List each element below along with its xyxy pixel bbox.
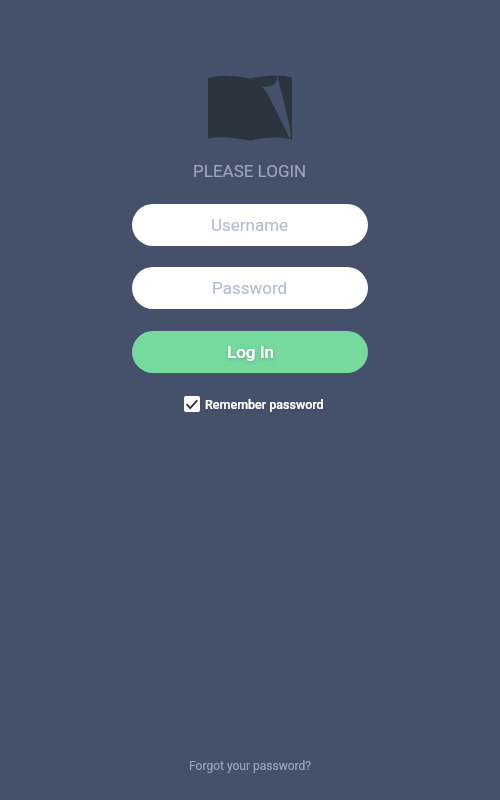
button[interactable]: Forgot your password? (179, 749, 321, 783)
staticText: Remember password (205, 397, 324, 412)
button[interactable]: Password (132, 267, 368, 309)
staticText: Password (212, 278, 288, 298)
button[interactable]: Username (132, 204, 368, 246)
staticText: Username (211, 215, 289, 235)
other: Application logo (208, 75, 292, 142)
button[interactable]: Remember password (180, 392, 328, 416)
staticText: Forgot your password? (189, 759, 311, 773)
staticText: PLEASE LOGIN (193, 161, 307, 181)
button[interactable]: Log In (132, 331, 368, 373)
staticText: Log In (227, 342, 274, 362)
